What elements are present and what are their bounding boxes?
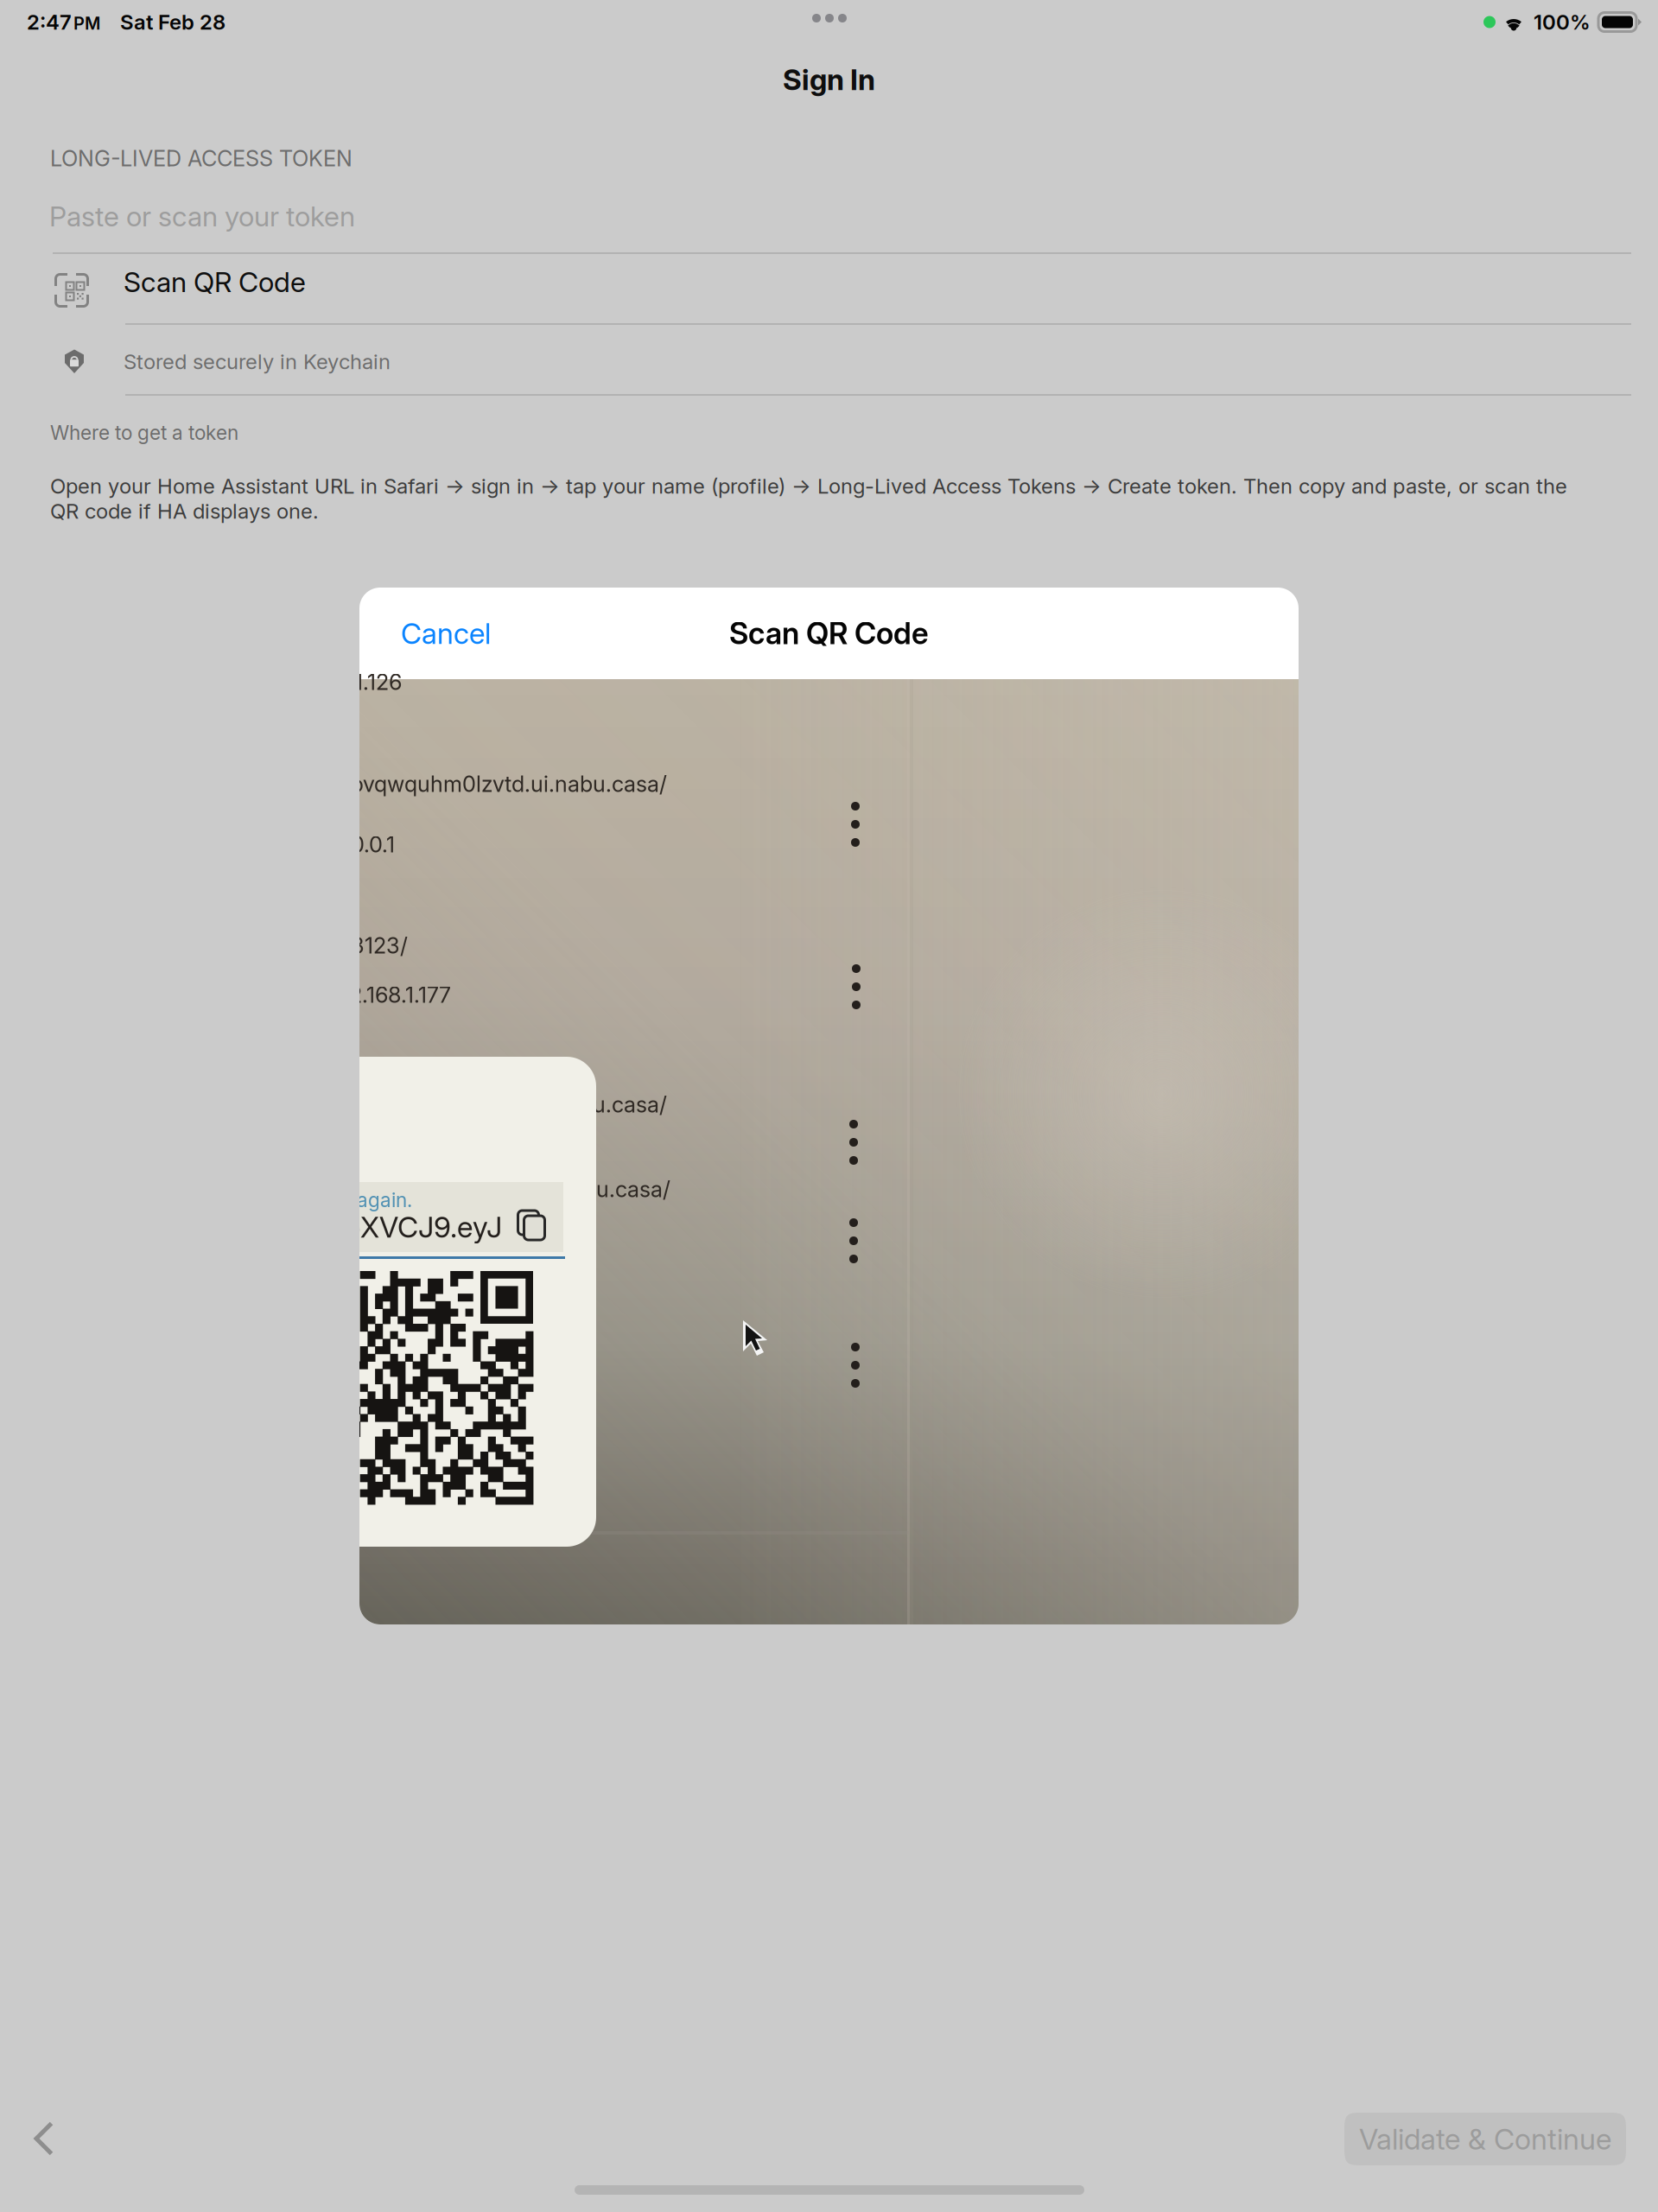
- staticText: LONG-LIVED ACCESS TOKEN: [50, 145, 353, 172]
- staticText: Open your Home Assistant URL in Safari →…: [50, 474, 1567, 524]
- staticText: u.casa/: [596, 1176, 670, 1203]
- staticText: 3123/: [351, 932, 408, 959]
- staticText: Cancel: [401, 616, 491, 651]
- staticText: Scan QR Code: [124, 265, 306, 299]
- staticText: ovqwquhm0lzvtd.ui.nabu.casa/: [351, 771, 667, 797]
- staticText: Sign In: [783, 62, 875, 97]
- staticText: Where to get a token: [50, 421, 238, 444]
- staticText: u.casa/: [593, 1091, 667, 1118]
- staticText: Validate & Continue: [1359, 2122, 1611, 2156]
- staticText: Stored securely in Keychain: [124, 349, 391, 374]
- staticText: Paste or scan your token: [49, 200, 355, 233]
- staticText: Scan QR Code: [729, 615, 929, 651]
- staticText: 1.126: [354, 669, 402, 695]
- button[interactable]: Back: [17, 2110, 71, 2167]
- staticText: 2.168.1.177: [349, 982, 451, 1008]
- staticText: own again.: [314, 1188, 412, 1212]
- staticText: 6IkpXVCJ9.eyJ: [305, 1210, 502, 1245]
- staticText: Sat Feb 28: [120, 10, 226, 35]
- staticText: 100%: [1534, 10, 1591, 35]
- staticText: 2:47: [27, 10, 72, 35]
- button[interactable]: Cancel: [359, 588, 532, 679]
- staticText: PM: [73, 13, 100, 34]
- staticText: 0.0.1: [351, 831, 395, 858]
- button[interactable]: Validate & Continue: [1344, 2113, 1626, 2165]
